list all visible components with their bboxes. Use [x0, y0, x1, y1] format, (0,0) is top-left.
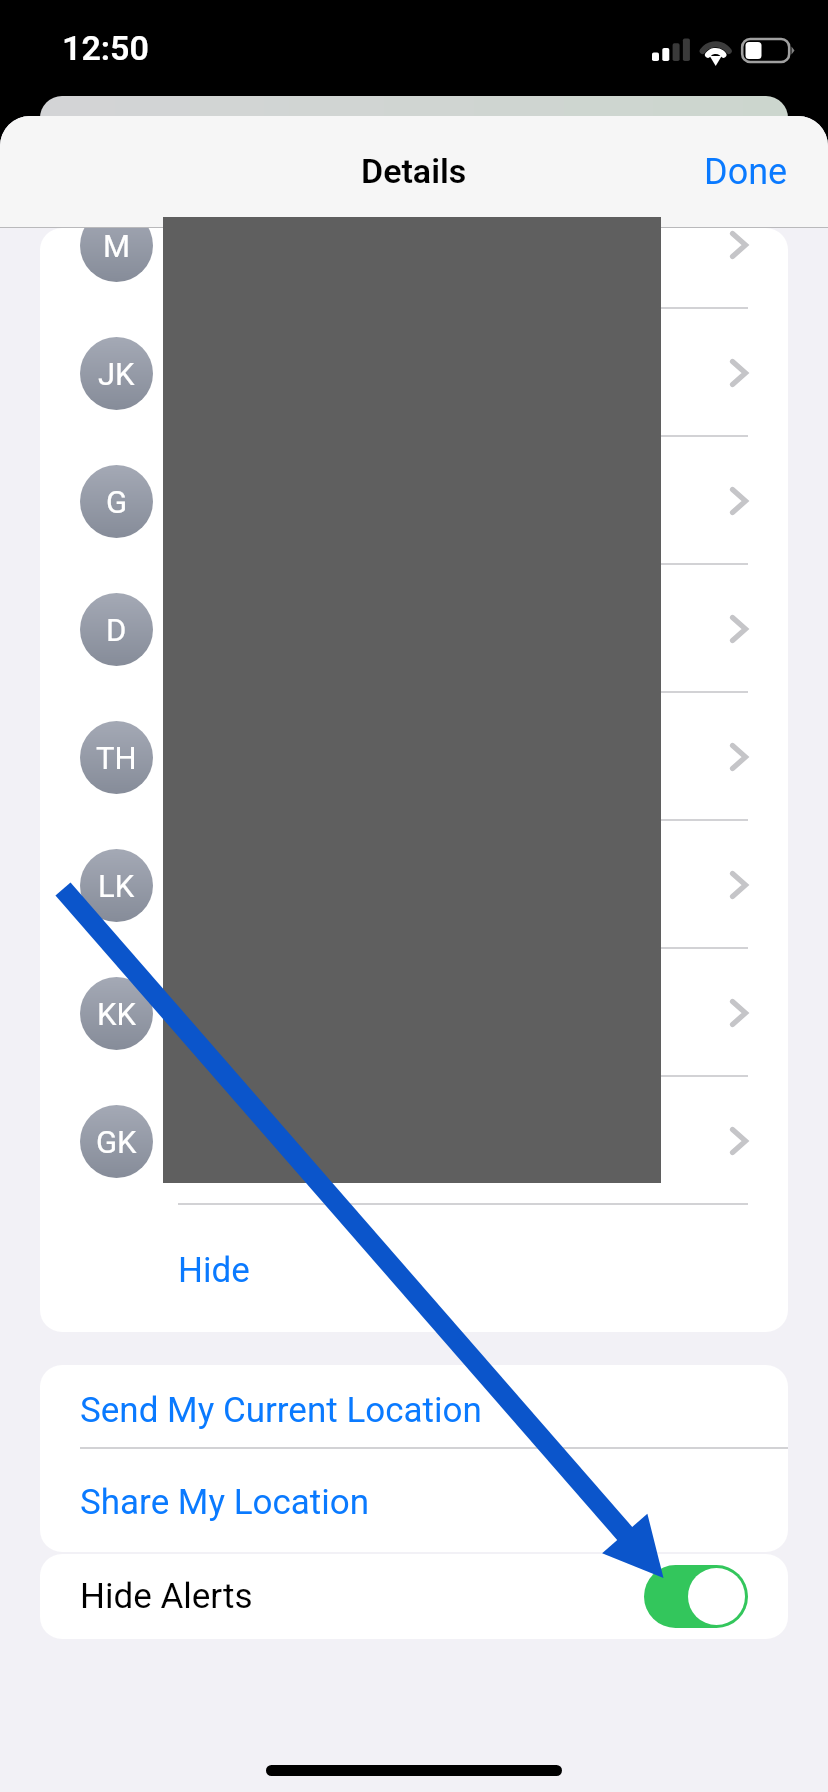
staticText: 12:50	[62, 28, 149, 68]
button[interactable]: M	[40, 228, 788, 309]
staticText: TH	[96, 740, 137, 776]
staticText: LK	[98, 868, 135, 904]
staticText: Send My Current Location	[80, 1390, 482, 1431]
button[interactable]: D	[40, 565, 788, 693]
staticText: M	[103, 228, 131, 264]
staticText: Share My Location	[80, 1482, 370, 1523]
staticText: D	[106, 612, 127, 648]
button[interactable]: LK	[40, 821, 788, 949]
button[interactable]: TH	[40, 693, 788, 821]
staticText: Done	[704, 151, 788, 193]
button[interactable]: Hide Alerts	[40, 1554, 788, 1639]
staticText: G	[106, 484, 128, 520]
staticText: Hide	[178, 1250, 250, 1291]
staticText: JK	[98, 356, 135, 392]
staticText: KK	[97, 996, 136, 1032]
button[interactable]: Hide	[40, 1205, 788, 1332]
button[interactable]: Done	[664, 127, 828, 217]
button[interactable]: GK	[40, 1077, 788, 1205]
button[interactable]: KK	[40, 949, 788, 1077]
button[interactable]: JK	[40, 309, 788, 437]
staticText: Details	[361, 151, 467, 191]
staticText: Hide Alerts	[80, 1576, 253, 1617]
button[interactable]: Share My Location	[40, 1448, 788, 1552]
staticText: GK	[96, 1124, 137, 1160]
other: Hide Alerts	[644, 1565, 748, 1628]
button[interactable]: G	[40, 437, 788, 565]
button[interactable]: Send My Current Location	[40, 1365, 788, 1447]
